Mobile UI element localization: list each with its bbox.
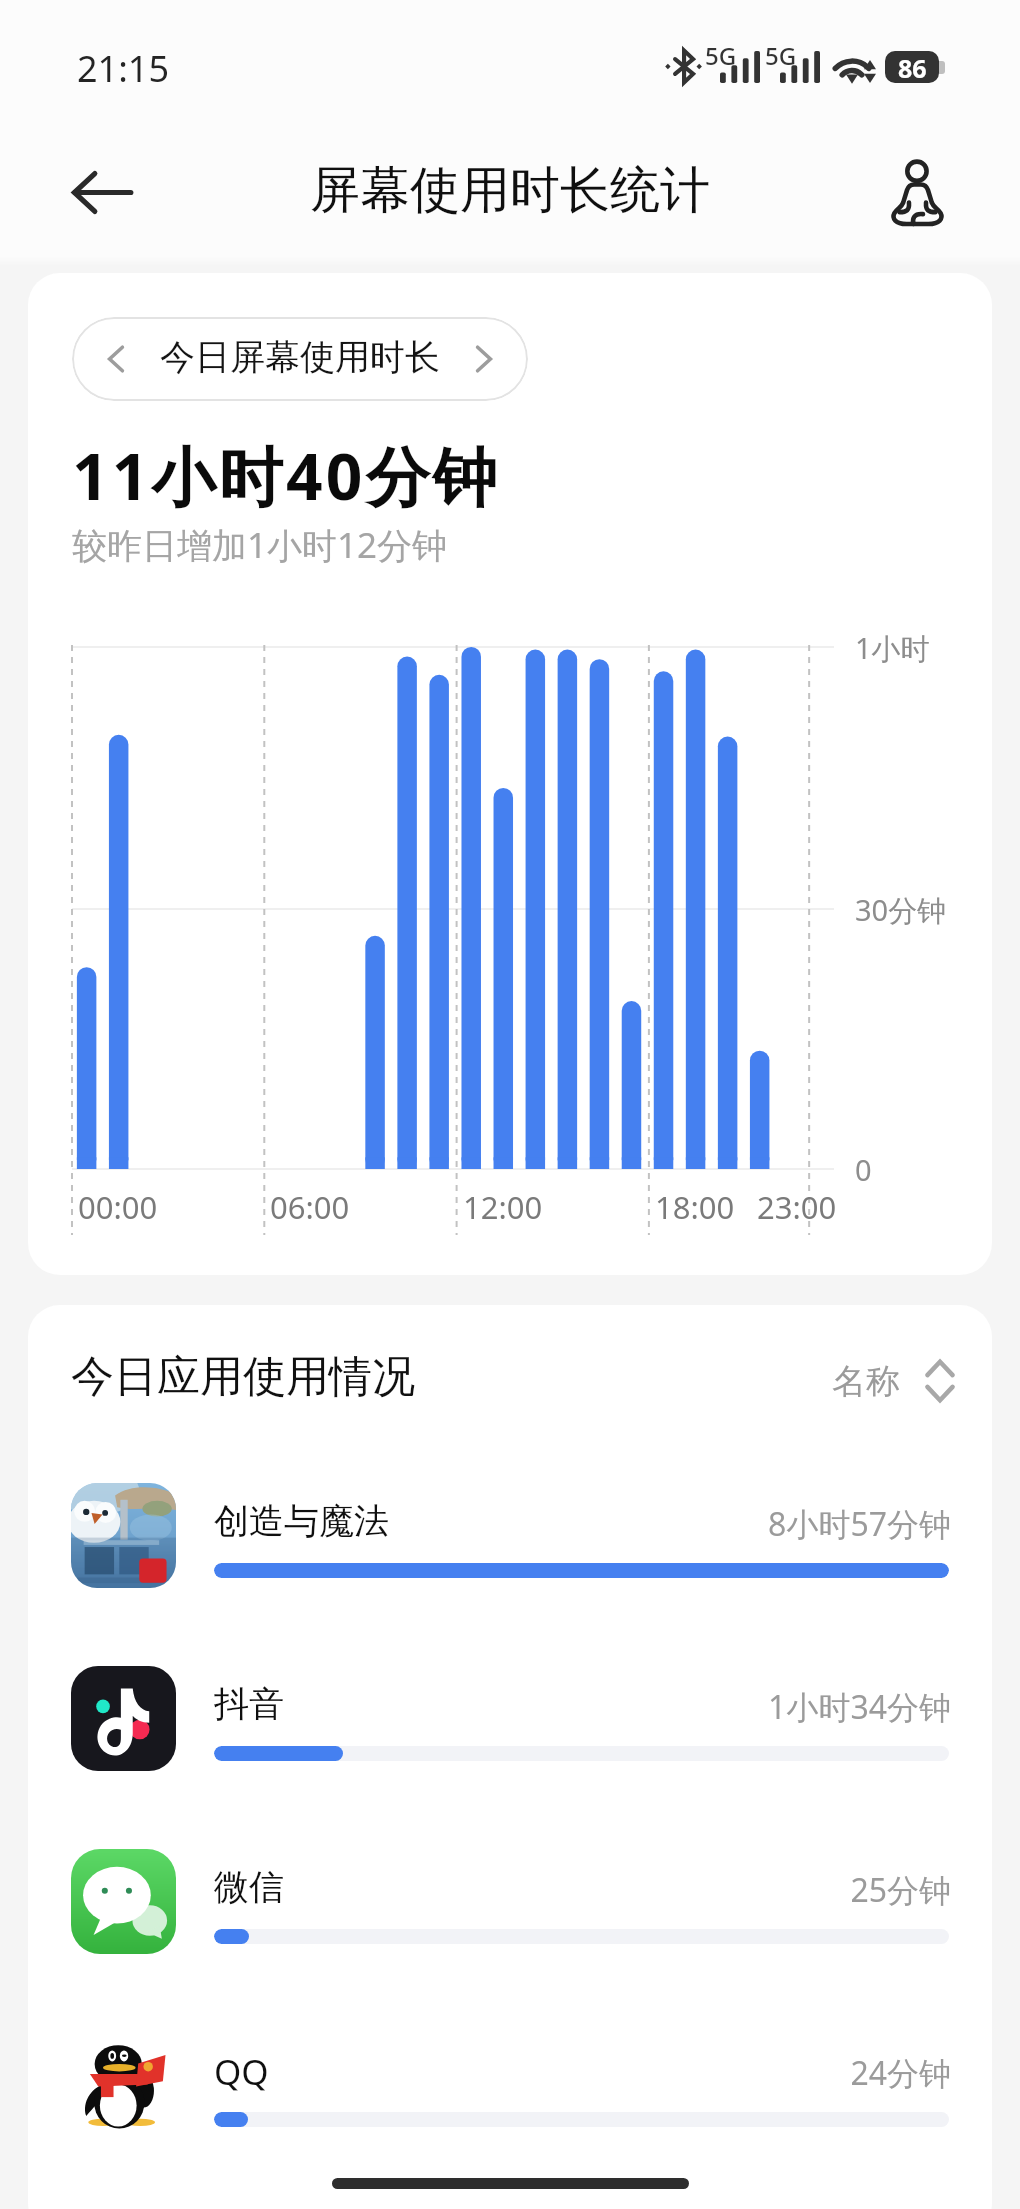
- button[interactable]: 创造与魔法: [28, 1465, 992, 1625]
- staticText: 名称: [832, 1360, 900, 1403]
- staticText: 06:00: [270, 1186, 350, 1228]
- button[interactable]: Back: [52, 142, 152, 242]
- staticText: 23:00: [757, 1186, 837, 1228]
- staticText: 屏幕使用时长统计: [310, 159, 710, 222]
- staticText: 12:00: [463, 1186, 543, 1228]
- staticText: 21:15: [77, 44, 170, 93]
- staticText: 25分钟: [528, 1868, 951, 1912]
- staticText: 抖音: [214, 1682, 284, 1726]
- staticText: 86: [898, 51, 927, 83]
- button[interactable]: 微信: [28, 1831, 992, 1991]
- staticText: 今日应用使用情况: [71, 1350, 415, 1404]
- staticText: 较昨日增加1小时12分钟: [72, 521, 448, 569]
- staticText: 00:00: [78, 1186, 158, 1228]
- staticText: 18:00: [655, 1186, 735, 1228]
- button[interactable]: 抖音: [28, 1648, 992, 1808]
- staticText: 5G: [705, 39, 737, 72]
- staticText: 创造与魔法: [214, 1499, 389, 1543]
- staticText: 0: [855, 1150, 872, 1189]
- button[interactable]: QQ: [28, 2014, 992, 2174]
- staticText: 微信: [214, 1865, 284, 1909]
- staticText: 24分钟: [528, 2051, 951, 2095]
- staticText: 5G: [765, 39, 797, 72]
- staticText: 1小时34分钟: [528, 1685, 951, 1729]
- staticText: QQ: [214, 2048, 269, 2096]
- button[interactable]: 今日屏幕使用时长: [72, 317, 528, 401]
- button[interactable]: 名称: [832, 1351, 954, 1411]
- staticText: 30分钟: [855, 890, 947, 930]
- button[interactable]: Focus mode: [867, 144, 967, 244]
- staticText: 8小时57分钟: [528, 1502, 951, 1546]
- staticText: 1小时: [855, 628, 930, 668]
- staticText: 11小时40分钟: [72, 432, 501, 519]
- staticText: 今日屏幕使用时长: [160, 335, 440, 379]
